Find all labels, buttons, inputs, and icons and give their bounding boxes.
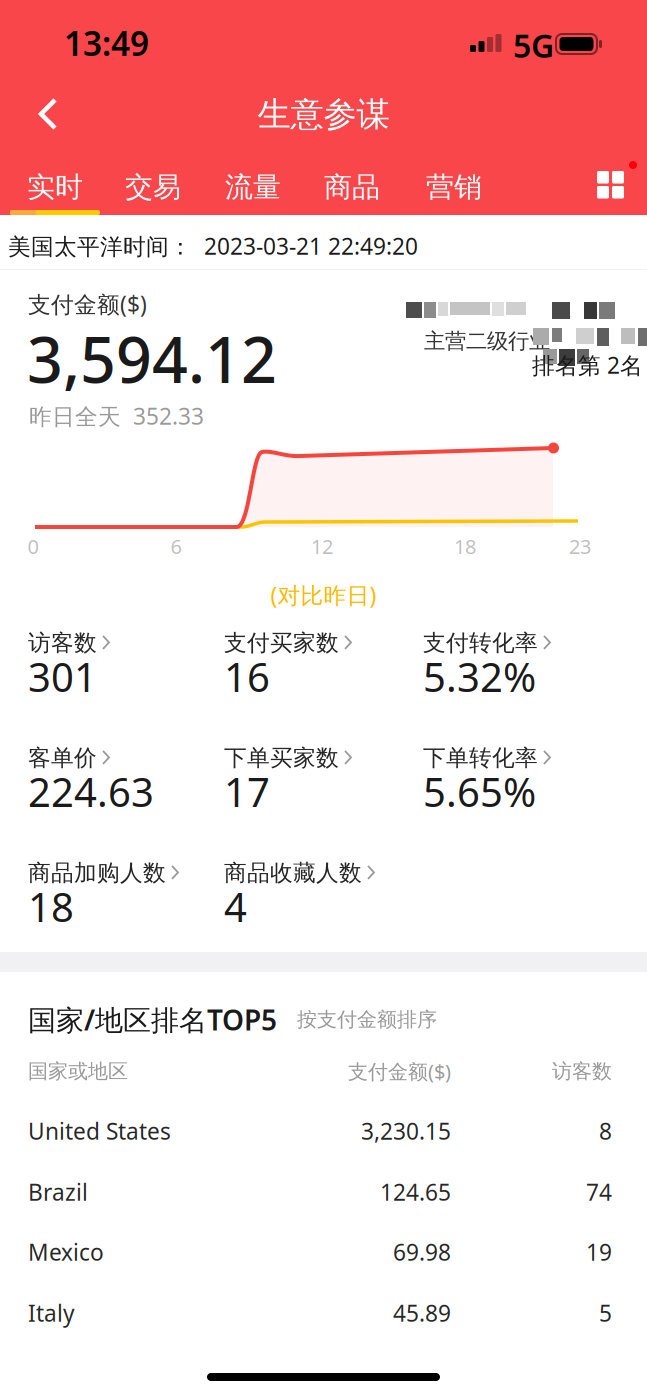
button[interactable]: 访客数 bbox=[28, 629, 224, 710]
button[interactable]: 营销 bbox=[420, 162, 488, 212]
button[interactable]: 支付买家数 bbox=[224, 629, 423, 710]
staticText: 支付买家数 bbox=[224, 629, 339, 657]
button[interactable]: 流量 bbox=[219, 162, 287, 212]
staticText: 16 bbox=[224, 650, 270, 703]
button[interactable]: 商品 bbox=[318, 162, 386, 212]
button[interactable]: 下单买家数 bbox=[224, 744, 423, 825]
staticText: 17 bbox=[224, 765, 270, 818]
staticText: 商品 bbox=[324, 170, 380, 204]
button[interactable]: Apps bbox=[590, 160, 638, 206]
button[interactable]: 商品收藏人数 bbox=[224, 859, 423, 940]
staticText: 昨日全天 352.33 bbox=[29, 401, 204, 431]
button[interactable]: 下单转化率 bbox=[423, 744, 619, 825]
staticText: 国家/地区排名TOP5 bbox=[28, 1001, 277, 1038]
staticText: 流量 bbox=[225, 170, 281, 204]
button[interactable]: 商品加购人数 bbox=[28, 859, 224, 940]
staticText: 访客数 bbox=[552, 1059, 612, 1084]
staticText: 301 bbox=[28, 650, 97, 703]
staticText: 交易 bbox=[125, 170, 181, 204]
staticText: 8 bbox=[599, 1116, 612, 1146]
staticText: 0 bbox=[27, 533, 38, 560]
staticText: 客单价 bbox=[28, 744, 97, 772]
staticText: 实时 bbox=[27, 170, 83, 204]
staticText: 74 bbox=[586, 1177, 612, 1207]
staticText: 12 bbox=[311, 533, 333, 560]
staticText: 5.32% bbox=[423, 650, 536, 703]
staticText: 23 bbox=[569, 533, 591, 560]
staticText: 5G bbox=[513, 24, 554, 66]
staticText: 美国太平洋时间： 2023-03-21 22:49:20 bbox=[8, 231, 418, 261]
button[interactable]: 客单价 bbox=[28, 744, 224, 825]
staticText: 224.63 bbox=[28, 765, 154, 818]
button[interactable]: 交易 bbox=[119, 162, 187, 212]
staticText: 商品收藏人数 bbox=[224, 859, 362, 887]
staticText: Brazil bbox=[28, 1177, 88, 1207]
staticText: 主营二级行业 bbox=[424, 328, 550, 354]
staticText: 按支付金额排序 bbox=[297, 1007, 437, 1032]
staticText: 下单买家数 bbox=[224, 744, 339, 772]
staticText: 18 bbox=[454, 533, 476, 560]
staticText: 124.65 bbox=[380, 1177, 451, 1207]
button[interactable]: 实时 bbox=[21, 162, 89, 212]
staticText: 5.65% bbox=[423, 765, 536, 818]
staticText: 国家或地区 bbox=[28, 1059, 128, 1084]
staticText: United States bbox=[28, 1116, 171, 1146]
staticText: 6 bbox=[170, 533, 181, 560]
staticText: 营销 bbox=[426, 170, 482, 204]
staticText: 45.89 bbox=[393, 1298, 451, 1328]
button[interactable]: 支付转化率 bbox=[423, 629, 619, 710]
staticText: 商品加购人数 bbox=[28, 859, 166, 887]
staticText: 3,594.12 bbox=[27, 317, 277, 400]
staticText: Italy bbox=[28, 1298, 75, 1328]
staticText: 5 bbox=[599, 1298, 612, 1328]
staticText: 4 bbox=[224, 880, 247, 933]
staticText: 下单转化率 bbox=[423, 744, 538, 772]
staticText: 13:49 bbox=[64, 21, 149, 65]
staticText: 18 bbox=[28, 880, 74, 933]
staticText: 支付金额($) bbox=[348, 1058, 451, 1085]
staticText: 生意参谋 bbox=[257, 94, 389, 135]
staticText: 支付转化率 bbox=[423, 629, 538, 657]
staticText: 访客数 bbox=[28, 629, 97, 657]
staticText: (对比昨日) bbox=[270, 580, 376, 610]
staticText: 69.98 bbox=[393, 1237, 451, 1267]
staticText: Mexico bbox=[28, 1237, 104, 1267]
staticText: 19 bbox=[586, 1237, 612, 1267]
staticText: 3,230.15 bbox=[361, 1116, 451, 1146]
button[interactable]: Back bbox=[37, 97, 77, 141]
button[interactable]: 按支付金额排序 bbox=[297, 1007, 437, 1032]
staticText: 排名第 2名 bbox=[532, 350, 643, 380]
staticText: 支付金额($) bbox=[28, 289, 147, 319]
